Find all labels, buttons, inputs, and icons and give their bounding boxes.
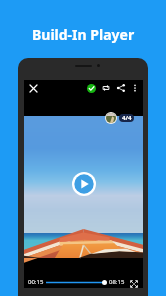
button[interactable]: Share xyxy=(114,81,128,95)
staticText: 00:15 xyxy=(28,278,44,286)
button[interactable]: Downloaded xyxy=(84,81,98,95)
button[interactable]: 4/4 xyxy=(119,114,134,122)
staticText: Build-In Player xyxy=(32,25,135,44)
button[interactable]: Exit fullscreen xyxy=(127,277,140,290)
button[interactable]: Close xyxy=(26,81,40,95)
button[interactable]: More options xyxy=(128,81,142,95)
button[interactable]: Play xyxy=(72,172,96,196)
staticText: 08:15 xyxy=(109,278,125,286)
button[interactable]: Profile xyxy=(106,113,116,123)
staticText: 4/4 xyxy=(122,114,132,122)
button[interactable]: Repeat xyxy=(99,81,113,95)
